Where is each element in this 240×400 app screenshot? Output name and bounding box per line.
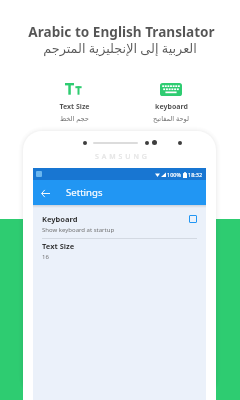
staticText: Text Size	[42, 241, 75, 251]
button[interactable]: keyboard	[140, 83, 202, 123]
button[interactable]: Keyboard	[33, 205, 206, 240]
staticText: 18:32	[188, 171, 203, 178]
button[interactable]: Text Size	[33, 241, 206, 268]
staticText: Settings	[66, 186, 103, 199]
staticText: 100%	[167, 171, 182, 178]
staticText: Keyboard	[42, 214, 78, 224]
staticText: Arabic to English Translator	[28, 22, 215, 41]
staticText: keyboard	[155, 102, 188, 112]
staticText: Show keyboard at startup	[42, 226, 115, 234]
staticText: 16	[42, 253, 49, 261]
staticText: Text Size	[59, 102, 90, 112]
staticText: العربية إلى الإنجليزية المترجم	[43, 39, 197, 56]
button[interactable]: Text Size	[43, 83, 105, 123]
staticText: لوحة المفاتيح	[153, 114, 189, 123]
staticText: حجم الخط	[60, 114, 89, 123]
staticText: SAMSUNG	[95, 152, 150, 162]
button[interactable]: Back	[37, 185, 53, 201]
